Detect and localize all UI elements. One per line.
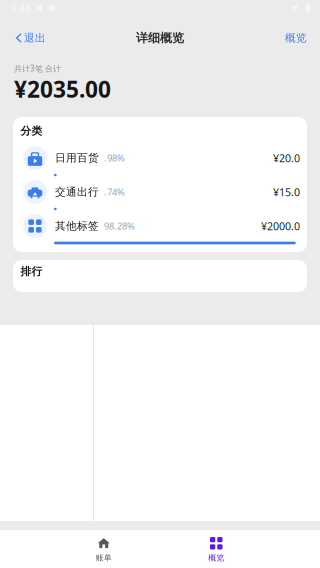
staticText: .98% — [104, 152, 125, 164]
staticText: ¥2000.0 — [261, 219, 300, 233]
staticText: 排行 — [20, 265, 42, 278]
button[interactable]: 排行 — [13, 260, 307, 292]
staticText: 账单 — [96, 553, 112, 563]
staticText: .74% — [104, 186, 125, 198]
button[interactable]: 账单 — [76, 530, 132, 568]
staticText: ¥20.0 — [273, 151, 300, 165]
staticText: 分类 — [20, 124, 42, 137]
staticText: ¥15.0 — [273, 185, 300, 199]
button[interactable]: 其他标签 — [13, 213, 307, 247]
staticText: 退出 — [24, 31, 46, 44]
staticText: 概览 — [208, 553, 224, 563]
button[interactable]: 概览 — [275, 20, 320, 56]
button[interactable]: 概览 — [188, 530, 244, 568]
staticText: 详细概览 — [136, 31, 184, 45]
staticText: 9:44 — [10, 1, 31, 15]
staticText: 其他标签 — [55, 219, 99, 232]
staticText: 共计3笔 合计 — [14, 63, 61, 74]
staticText: 交通出行 — [55, 185, 99, 198]
button[interactable]: 退出 — [0, 20, 56, 56]
button[interactable]: 交通出行 — [13, 179, 307, 213]
button[interactable]: 日用百货 — [13, 145, 307, 179]
staticText: ¥2035.00 — [14, 74, 111, 104]
staticText: 日用百货 — [55, 151, 99, 164]
staticText: 98.28% — [104, 220, 135, 232]
staticText: 概览 — [285, 31, 307, 44]
